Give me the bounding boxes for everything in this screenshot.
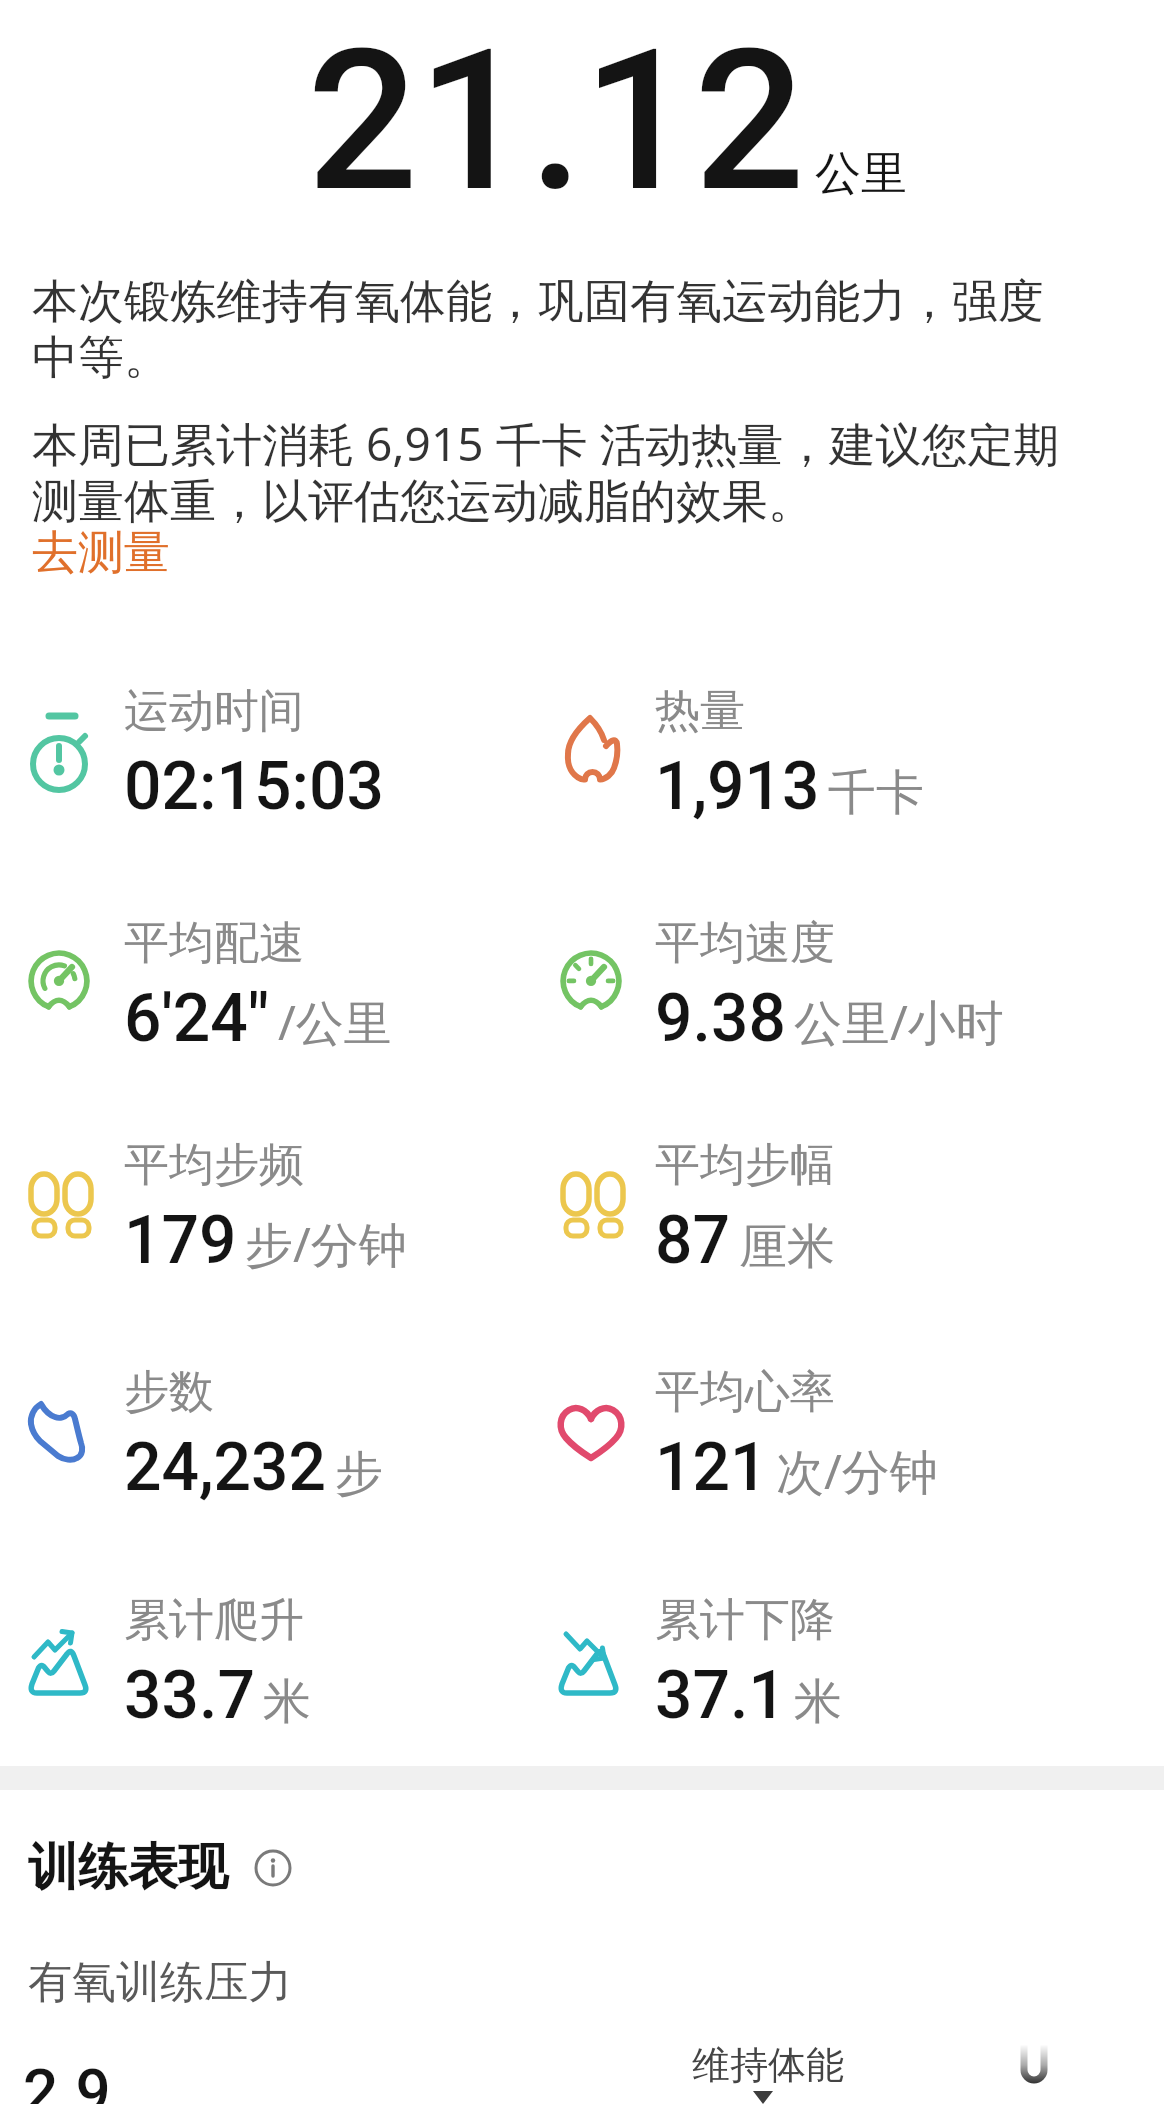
button[interactable]: 6'24": [124, 980, 392, 1057]
staticText: 平均心率: [655, 1364, 835, 1421]
staticText: 累计下降: [655, 1592, 835, 1649]
staticText: 24,232: [124, 1429, 327, 1506]
staticText: 21.12: [307, 7, 805, 236]
staticText: 运动时间: [124, 683, 304, 740]
button[interactable]: 179: [124, 1202, 407, 1279]
button[interactable]: 24,232: [124, 1429, 383, 1506]
staticText: 次/分钟: [776, 1438, 938, 1504]
staticText: 公里/小时: [794, 989, 1004, 1055]
staticText: 本次锻炼维持有氧体能，巩固有氧运动能力，强度 中等。: [32, 273, 1152, 386]
staticText: 公里: [815, 145, 907, 203]
staticText: 厘米: [739, 1217, 835, 1277]
staticText: 步数: [124, 1364, 214, 1421]
button[interactable]: 87: [655, 1202, 835, 1279]
button[interactable]: 训练表现: [28, 1836, 292, 1899]
staticText: 步: [335, 1444, 383, 1504]
button[interactable]: 33.7: [124, 1657, 311, 1734]
staticText: 步/分钟: [245, 1211, 407, 1277]
staticText: 37.1: [655, 1657, 786, 1734]
staticText: 平均速度: [655, 915, 835, 972]
staticText: 累计爬升: [124, 1592, 304, 1649]
staticText: 本周已累计消耗 6,915 千卡 活动热量，建议您定期 测量体重，以评估您运动减…: [32, 412, 1152, 530]
staticText: 121: [655, 1429, 768, 1506]
staticText: 33.7: [124, 1657, 255, 1734]
staticText: 87: [655, 1202, 731, 1279]
button[interactable]: 1,913: [655, 748, 924, 825]
staticText: 9.38: [655, 980, 786, 1057]
staticText: 平均步幅: [655, 1137, 835, 1194]
button[interactable]: 02:15:03: [124, 748, 385, 825]
button[interactable]: 121: [655, 1429, 938, 1506]
staticText: 平均步频: [124, 1137, 304, 1194]
button[interactable]: 37.1: [655, 1657, 842, 1734]
staticText: 179: [124, 1202, 237, 1279]
staticText: 2.9: [23, 2055, 111, 2104]
staticText: 6'24": [124, 980, 270, 1057]
staticText: 02:15:03: [124, 748, 385, 825]
staticText: 米: [794, 1672, 842, 1732]
staticText: 平均配速: [124, 915, 304, 972]
staticText: 训练表现: [28, 1836, 228, 1899]
button[interactable]: 9.38: [655, 980, 1004, 1057]
staticText: 热量: [655, 683, 745, 740]
staticText: 千卡: [828, 763, 924, 823]
staticText: 米: [263, 1672, 311, 1732]
staticText: /公里: [278, 989, 392, 1055]
staticText: 有氧训练压力: [28, 1955, 292, 2010]
staticText: 1,913: [655, 748, 820, 825]
